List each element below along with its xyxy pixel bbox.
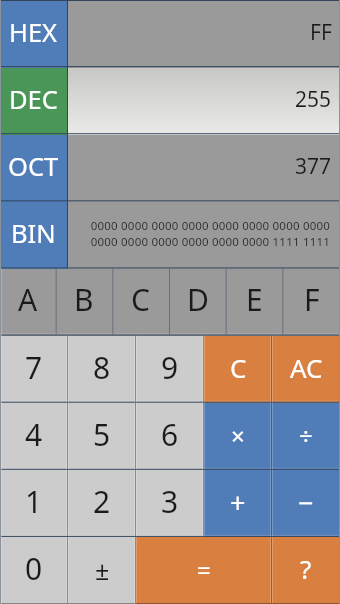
button[interactable]: AC	[272, 336, 340, 403]
button[interactable]: Help	[272, 537, 340, 604]
button[interactable]: 1	[0, 470, 68, 537]
staticText: 0	[25, 548, 43, 589]
button[interactable]: D	[169, 269, 226, 336]
staticText: −	[298, 484, 314, 521]
button[interactable]: 2	[68, 470, 136, 537]
staticText: ±	[95, 553, 110, 587]
button[interactable]: C	[112, 269, 169, 336]
staticText: FF	[310, 18, 332, 47]
button[interactable]: 8	[68, 336, 136, 403]
button[interactable]: HEX	[0, 0, 67, 68]
button[interactable]: E	[226, 269, 283, 336]
staticText: 7	[25, 347, 43, 388]
staticText: AC	[290, 350, 323, 385]
button[interactable]: DEC	[0, 68, 67, 135]
button[interactable]: Divide	[272, 403, 340, 470]
staticText: ÷	[299, 419, 313, 452]
button[interactable]: 0	[0, 537, 68, 604]
staticText: C	[131, 279, 150, 320]
staticText: 5	[93, 414, 111, 455]
button[interactable]: 4	[0, 403, 68, 470]
button[interactable]: Minus	[272, 470, 340, 537]
staticText: +	[230, 484, 246, 521]
staticText: D	[187, 279, 209, 320]
staticText: 1	[25, 481, 43, 522]
button[interactable]: A	[0, 269, 56, 336]
button[interactable]: OCT	[0, 135, 67, 202]
staticText: 3	[161, 481, 179, 522]
staticText: 2	[93, 481, 111, 522]
button[interactable]: 6	[136, 403, 204, 470]
staticText: DEC	[9, 82, 58, 117]
staticText: 9	[161, 347, 179, 388]
staticText: 4	[25, 414, 43, 455]
button[interactable]: 7	[0, 336, 68, 403]
button[interactable]: 0000 0000 0000 0000 0000 0000 0000 0000 …	[67, 202, 340, 269]
button[interactable]: FF	[67, 0, 340, 68]
staticText: HEX	[9, 15, 58, 50]
button[interactable]: 3	[136, 470, 204, 537]
staticText: =	[197, 553, 211, 586]
button[interactable]: 5	[68, 403, 136, 470]
button[interactable]: Multiply	[204, 403, 272, 470]
button[interactable]: Plus minus sign	[68, 537, 136, 604]
staticText: A	[18, 279, 38, 320]
button[interactable]: 377	[67, 135, 340, 202]
button[interactable]: C	[204, 336, 272, 403]
staticText: ?	[300, 551, 312, 586]
staticText: 8	[93, 347, 111, 388]
staticText: ×	[231, 419, 245, 452]
staticText: 255	[295, 85, 332, 114]
staticText: B	[74, 279, 94, 320]
button[interactable]: 255	[67, 68, 340, 135]
staticText: 377	[295, 152, 332, 181]
button[interactable]: BIN	[0, 202, 67, 269]
staticText: 6	[161, 414, 179, 455]
button[interactable]: Equals	[136, 537, 272, 604]
button[interactable]: B	[56, 269, 112, 336]
staticText: BIN	[11, 216, 56, 251]
staticText: C	[230, 350, 247, 385]
button[interactable]: 9	[136, 336, 204, 403]
staticText: F	[304, 279, 320, 320]
staticText: 0000 0000 0000 0000 0000 0000 0000 0000 …	[90, 218, 330, 250]
staticText: E	[246, 279, 263, 320]
button[interactable]: Plus	[204, 470, 272, 537]
button[interactable]: F	[283, 269, 340, 336]
staticText: OCT	[8, 149, 59, 184]
